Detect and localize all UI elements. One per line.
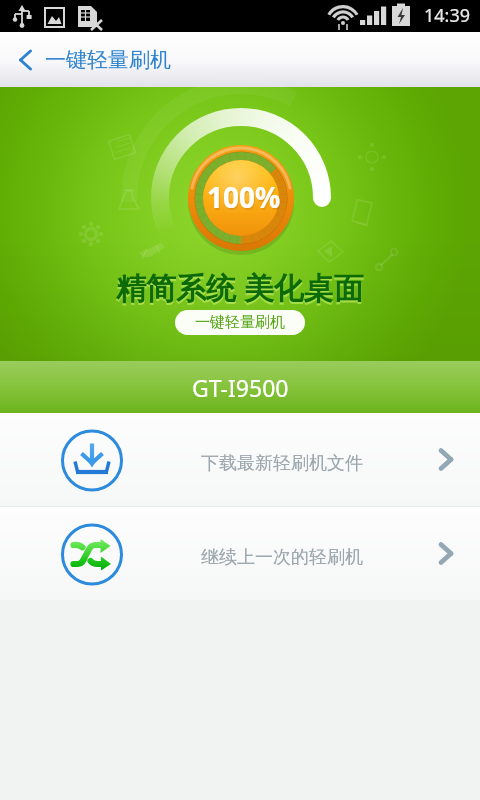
staticText: 14:39 <box>424 3 471 28</box>
staticText: 一键轻量刷机 <box>45 47 171 73</box>
staticText: 精简系统 美化桌面 <box>116 269 364 310</box>
staticText: 继续上一次的轻刷机 <box>201 546 363 569</box>
staticText: 100% <box>207 178 281 216</box>
staticText: 精简系统 美化桌面 <box>116 267 364 308</box>
staticText: 一键轻量刷机 <box>195 313 285 332</box>
button[interactable]: 继续上一次的轻刷机 <box>0 507 480 600</box>
button[interactable]: 下载最新轻刷机文件 <box>0 413 480 506</box>
staticText: GT-I9500 <box>192 372 289 403</box>
staticText: 100% <box>208 180 282 218</box>
staticText: 下载最新轻刷机文件 <box>201 452 363 475</box>
button[interactable]: Back <box>0 32 44 87</box>
